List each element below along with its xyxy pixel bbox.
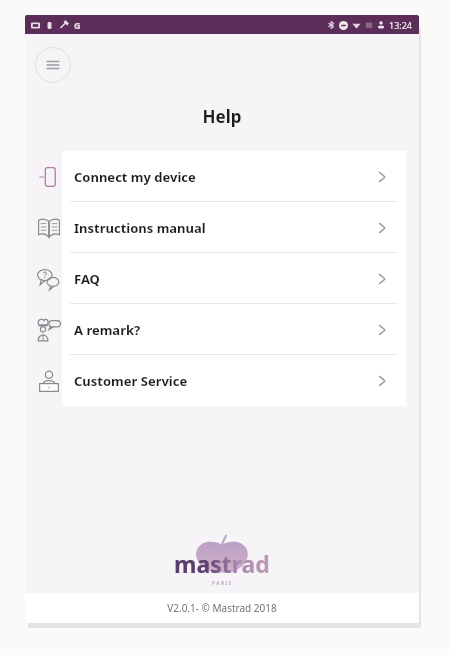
staticText: P A R I S xyxy=(212,580,232,586)
staticText: FAQ xyxy=(74,270,375,288)
button[interactable]: Customer Service xyxy=(25,355,419,406)
button[interactable]: Instructions manual xyxy=(25,202,419,253)
staticText: mastrad xyxy=(174,548,270,579)
staticText: Help xyxy=(25,105,419,128)
button[interactable]: Connect my device xyxy=(25,151,419,202)
button[interactable]: A remark? xyxy=(25,304,419,355)
staticText: V2.0.1- © Mastrad 2018 xyxy=(167,601,277,615)
staticText: Customer Service xyxy=(74,372,375,390)
button[interactable]: FAQ xyxy=(25,253,419,304)
staticText: Connect my device xyxy=(74,168,375,186)
staticText: 13:24 xyxy=(389,19,413,31)
staticText: G xyxy=(74,19,81,31)
staticText: A remark? xyxy=(74,321,375,339)
staticText: Instructions manual xyxy=(74,219,375,237)
button[interactable]: Menu xyxy=(35,47,71,83)
